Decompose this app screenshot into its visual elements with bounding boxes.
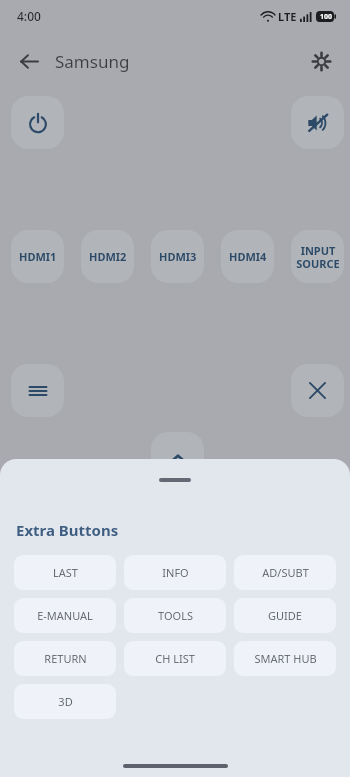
staticText: GUIDE	[268, 608, 302, 623]
button[interactable]: LAST	[14, 555, 116, 590]
staticText: HDMI3	[159, 249, 197, 264]
button[interactable]: Menu	[11, 364, 64, 417]
button[interactable]: HDMI1	[11, 230, 64, 283]
button[interactable]: INFO	[124, 555, 226, 590]
staticText: 100	[320, 12, 333, 22]
staticText: HDMI4	[229, 249, 267, 264]
staticText: AD/SUBT	[262, 565, 309, 580]
button[interactable]: Close	[291, 364, 344, 417]
staticText: CH LIST	[155, 651, 195, 666]
staticText: HDMI2	[89, 249, 127, 264]
staticText: TOOLS	[158, 608, 193, 623]
staticText: Extra Buttons	[16, 520, 119, 540]
button[interactable]: Back	[12, 44, 46, 78]
button[interactable]: GUIDE	[234, 598, 336, 633]
staticText: 4:00	[17, 8, 41, 24]
staticText: Samsung	[55, 50, 130, 73]
staticText: INPUT SOURCE	[296, 243, 340, 271]
staticText: HDMI1	[19, 249, 57, 264]
button[interactable]: Power	[11, 96, 64, 149]
button[interactable]: 3D	[14, 684, 116, 719]
button[interactable]: TOOLS	[124, 598, 226, 633]
button[interactable]: E-MANUAL	[14, 598, 116, 633]
button[interactable]: HDMI2	[81, 230, 134, 283]
button[interactable]: AD/SUBT	[234, 555, 336, 590]
staticText: SMART HUB	[254, 651, 317, 666]
staticText: LAST	[53, 565, 78, 580]
staticText: LTE	[278, 9, 297, 24]
staticText: RETURN	[44, 651, 87, 666]
staticText: INFO	[162, 565, 189, 580]
button[interactable]: CH LIST	[124, 641, 226, 676]
button[interactable]: Mute	[291, 96, 344, 149]
button[interactable]: Settings	[304, 44, 338, 78]
button[interactable]: RETURN	[14, 641, 116, 676]
button[interactable]: HDMI4	[221, 230, 274, 283]
button[interactable]: INPUT SOURCE	[291, 230, 344, 283]
staticText: E-MANUAL	[37, 608, 93, 623]
staticText: 3D	[58, 694, 73, 709]
button[interactable]: Up	[151, 432, 204, 485]
button[interactable]: SMART HUB	[234, 641, 336, 676]
button[interactable]: HDMI3	[151, 230, 204, 283]
